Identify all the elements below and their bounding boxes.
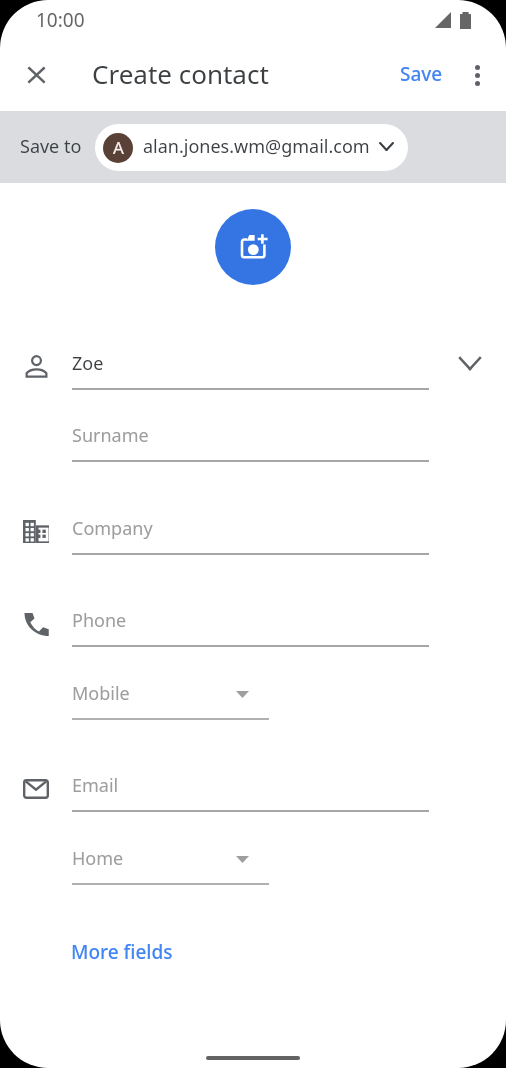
button[interactable]: A [95, 124, 408, 171]
staticText: 10:00 [36, 7, 85, 33]
staticText: Email [72, 773, 119, 798]
button[interactable]: Company [72, 515, 429, 555]
staticText: Save to [20, 134, 82, 159]
button[interactable]: Home [72, 845, 269, 885]
button[interactable]: Mobile [72, 680, 269, 720]
staticText: Phone [72, 608, 127, 633]
staticText: Create contact [92, 56, 269, 91]
button[interactable]: Zoe [72, 350, 429, 390]
staticText: Home [72, 846, 124, 871]
staticText: Mobile [72, 681, 130, 706]
staticText: A [113, 136, 124, 159]
staticText: Surname [72, 423, 149, 448]
button[interactable]: Surname [72, 422, 429, 462]
staticText: Save [400, 61, 443, 87]
button[interactable]: Save [390, 54, 453, 94]
button[interactable]: Add photo [215, 209, 291, 285]
button[interactable]: Email [72, 772, 429, 812]
button[interactable]: Phone [72, 607, 429, 647]
button[interactable]: More options [455, 53, 499, 97]
button[interactable]: Expand name fields [448, 341, 492, 385]
staticText: Company [72, 516, 153, 541]
button[interactable]: Close [14, 53, 58, 97]
staticText: alan.jones.wm@gmail.com [143, 134, 370, 159]
staticText: Zoe [72, 351, 104, 376]
button[interactable]: More fields [62, 930, 182, 974]
staticText: More fields [71, 939, 173, 965]
